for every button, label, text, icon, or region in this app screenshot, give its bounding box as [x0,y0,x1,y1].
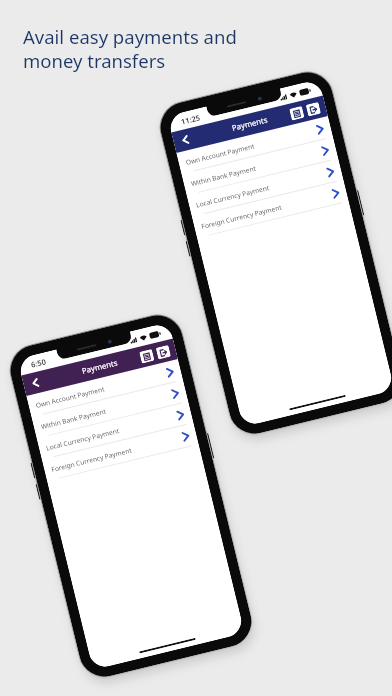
button[interactable]: Statements [289,106,305,121]
button[interactable]: Statements [139,349,155,364]
staticText: Payments [81,357,119,377]
button[interactable]: Back [21,370,50,396]
staticText: Own Account Payment [35,384,106,410]
staticText: Foreign Currency Payment [50,446,133,474]
staticText: Payments [231,114,269,134]
button[interactable]: Within Bank Payment [31,380,188,439]
button[interactable]: Foreign Currency Payment [192,180,349,238]
staticText: Within Bank Payment [190,164,257,188]
button[interactable]: Own Account Payment [176,116,333,174]
button[interactable]: Foreign Currency Payment [42,423,199,481]
button[interactable]: Back [171,127,200,153]
staticText: Foreign Currency Payment [200,203,283,231]
button[interactable]: Own Account Payment [26,359,183,417]
button[interactable]: Local Currency Payment [187,159,343,217]
button[interactable]: Logout [156,345,171,360]
staticText: 11:25 [180,112,202,127]
staticText: Avail easy payments and money transfers [23,24,237,73]
button[interactable]: Within Bank Payment [181,137,338,196]
staticText: Local Currency Payment [45,426,120,453]
staticText: Own Account Payment [185,141,256,167]
staticText: Local Currency Payment [195,183,270,210]
button[interactable]: Logout [306,102,321,117]
button[interactable]: Local Currency Payment [37,402,193,460]
staticText: Within Bank Payment [40,407,107,431]
staticText: 6:50 [30,356,47,370]
